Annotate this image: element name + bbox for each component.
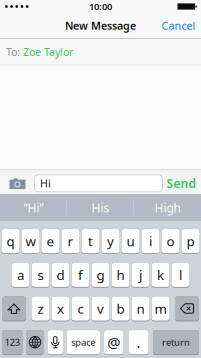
button[interactable]: h [111, 263, 129, 288]
staticText: y [107, 232, 114, 250]
staticText: 123 [5, 336, 20, 348]
button[interactable]: Shift [2, 296, 26, 321]
button[interactable]: High [134, 194, 201, 221]
button[interactable]: v [91, 296, 109, 321]
staticText: 10:00 [89, 0, 112, 13]
button[interactable]: u [121, 229, 139, 254]
staticText: j [139, 266, 142, 284]
button[interactable]: return [153, 330, 199, 355]
button[interactable]: c [71, 296, 89, 321]
button[interactable]: d [51, 263, 69, 288]
button[interactable]: . [128, 330, 148, 355]
button[interactable]: z [31, 296, 49, 321]
button[interactable]: k [151, 263, 169, 288]
staticText: d [56, 266, 64, 284]
staticText: Cancel [161, 19, 195, 33]
staticText: t [88, 232, 93, 250]
button[interactable]: Send [162, 175, 201, 191]
button[interactable]: a [11, 263, 29, 288]
staticText: a [17, 266, 24, 284]
button[interactable]: 123 [2, 330, 22, 355]
staticText: . [136, 332, 140, 352]
staticText: “Hi” [23, 200, 43, 216]
staticText: n [136, 300, 144, 317]
button[interactable]: y [101, 229, 119, 254]
staticText: High [154, 200, 180, 216]
button[interactable]: w [21, 229, 39, 254]
button[interactable]: t [81, 229, 99, 254]
staticText: His [91, 200, 109, 216]
staticText: u [126, 232, 134, 250]
button[interactable]: i [141, 229, 159, 254]
staticText: Send [166, 175, 196, 191]
staticText: l [179, 266, 182, 284]
staticText: q [6, 232, 14, 250]
button[interactable]: “Hi” [0, 194, 67, 221]
button[interactable]: l [171, 263, 189, 288]
staticText: return [162, 336, 190, 348]
staticText: w [25, 232, 35, 250]
button[interactable]: Camera [0, 177, 26, 189]
staticText: e [46, 232, 54, 250]
button[interactable]: r [61, 229, 79, 254]
staticText: p [186, 232, 194, 250]
button[interactable]: @ [104, 330, 123, 355]
staticText: c [77, 300, 83, 317]
button[interactable]: o [161, 229, 179, 254]
staticText: New Message [65, 19, 136, 33]
button[interactable]: Hi [34, 175, 162, 192]
button[interactable]: His [67, 194, 134, 221]
staticText: z [37, 300, 43, 317]
staticText: b [116, 300, 124, 317]
button[interactable]: e [41, 229, 59, 254]
button[interactable]: f [71, 263, 89, 288]
staticText: i [149, 232, 152, 250]
button[interactable]: m [151, 296, 169, 321]
staticText: Hi [40, 176, 51, 190]
button[interactable]: Zoe Taylor [23, 45, 73, 59]
staticText: v [97, 300, 104, 317]
staticText: s [37, 266, 43, 284]
button[interactable]: j [131, 263, 149, 288]
staticText: o [166, 232, 174, 250]
staticText: f [78, 266, 83, 284]
button[interactable]: Cancel [161, 19, 201, 33]
staticText: Zoe Taylor [23, 45, 73, 59]
button[interactable]: s [31, 263, 49, 288]
button[interactable]: Dictate [47, 330, 63, 355]
staticText: To: [6, 45, 23, 59]
button[interactable]: q [1, 229, 19, 254]
staticText: h [116, 266, 124, 284]
staticText: @ [107, 332, 120, 352]
staticText: m [154, 300, 166, 317]
staticText: space [71, 336, 95, 348]
staticText: k [157, 266, 164, 284]
button[interactable]: Delete [175, 296, 199, 321]
staticText: x [57, 300, 64, 317]
button[interactable]: x [51, 296, 69, 321]
button[interactable]: n [131, 296, 149, 321]
button[interactable]: Next keyboard [26, 330, 44, 355]
button[interactable]: p [181, 229, 199, 254]
staticText: g [96, 266, 104, 284]
button[interactable]: b [111, 296, 129, 321]
button[interactable]: g [91, 263, 109, 288]
button[interactable]: space [66, 330, 100, 355]
staticText: r [67, 232, 73, 250]
